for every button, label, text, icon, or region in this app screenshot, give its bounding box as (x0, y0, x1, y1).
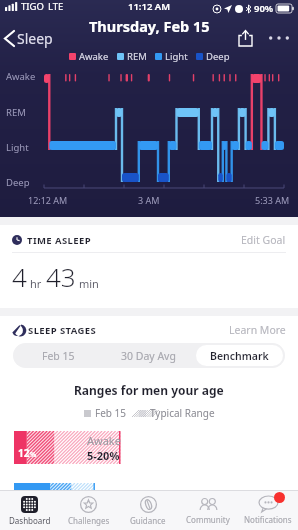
staticText: Ranges for men your age (74, 382, 224, 398)
staticText: 5:33 AM (255, 194, 290, 206)
staticText: Awake (87, 433, 121, 448)
staticText: REM (127, 50, 147, 63)
staticText: 5-20% (87, 448, 120, 463)
staticText: Sleep (17, 29, 53, 48)
staticText: Challenges (68, 515, 110, 526)
button[interactable] (0, 483, 298, 503)
button[interactable]: Sleep (0, 23, 59, 54)
staticText: Benchmark (210, 349, 269, 363)
staticText: Awake (79, 50, 109, 63)
staticText: TIME ASLEEP (27, 234, 91, 247)
staticText: 43 (46, 259, 76, 294)
button[interactable]: Awake (0, 431, 298, 464)
staticText: hr (30, 276, 42, 291)
button[interactable]: 30 Day Avg (103, 343, 194, 368)
button[interactable]: Challenges (59, 491, 118, 530)
staticText: LTE (48, 0, 64, 13)
staticText: Community (186, 514, 230, 525)
staticText: Deep (6, 176, 30, 189)
staticText: Feb 15 (95, 406, 127, 420)
staticText: min (79, 276, 99, 291)
staticText: Edit Goal (241, 233, 286, 247)
staticText: Light (165, 50, 188, 63)
button[interactable]: Share (231, 22, 260, 54)
staticText: % (30, 450, 37, 460)
button[interactable]: Feb 15 (13, 343, 103, 368)
staticText: 3 AM (138, 194, 160, 206)
staticText: TIGO (21, 0, 44, 13)
button[interactable]: Dashboard (0, 491, 59, 530)
staticText: REM (6, 106, 26, 119)
staticText: Typical Range (150, 406, 215, 420)
staticText: 12 (18, 446, 30, 460)
button[interactable]: Benchmark (196, 345, 283, 366)
button[interactable]: Notifications (238, 491, 298, 530)
staticText: 90% (254, 2, 274, 15)
staticText: Awake (6, 70, 36, 83)
staticText: 4 (12, 259, 27, 294)
staticText: Notifications (244, 514, 292, 525)
staticText: Thursday, Feb 15 (89, 16, 210, 36)
button[interactable]: Community (178, 491, 238, 530)
button[interactable]: TIME ASLEEP (0, 225, 298, 252)
staticText: Guidance (130, 515, 166, 526)
button[interactable]: More options (260, 26, 298, 50)
staticText: Dashboard (9, 515, 51, 526)
staticText: Feb 15 (42, 349, 75, 363)
staticText: Learn More (229, 323, 286, 337)
staticText: SLEEP STAGES (28, 324, 97, 337)
button[interactable]: SLEEP STAGES (0, 316, 298, 343)
staticText: Light (6, 141, 29, 154)
staticText: 30 Day Avg (121, 349, 176, 363)
staticText: 11:12 AM (128, 0, 171, 13)
staticText: 12:12 AM (28, 194, 68, 206)
staticText: Deep (206, 50, 230, 63)
button[interactable]: Guidance (118, 491, 178, 530)
